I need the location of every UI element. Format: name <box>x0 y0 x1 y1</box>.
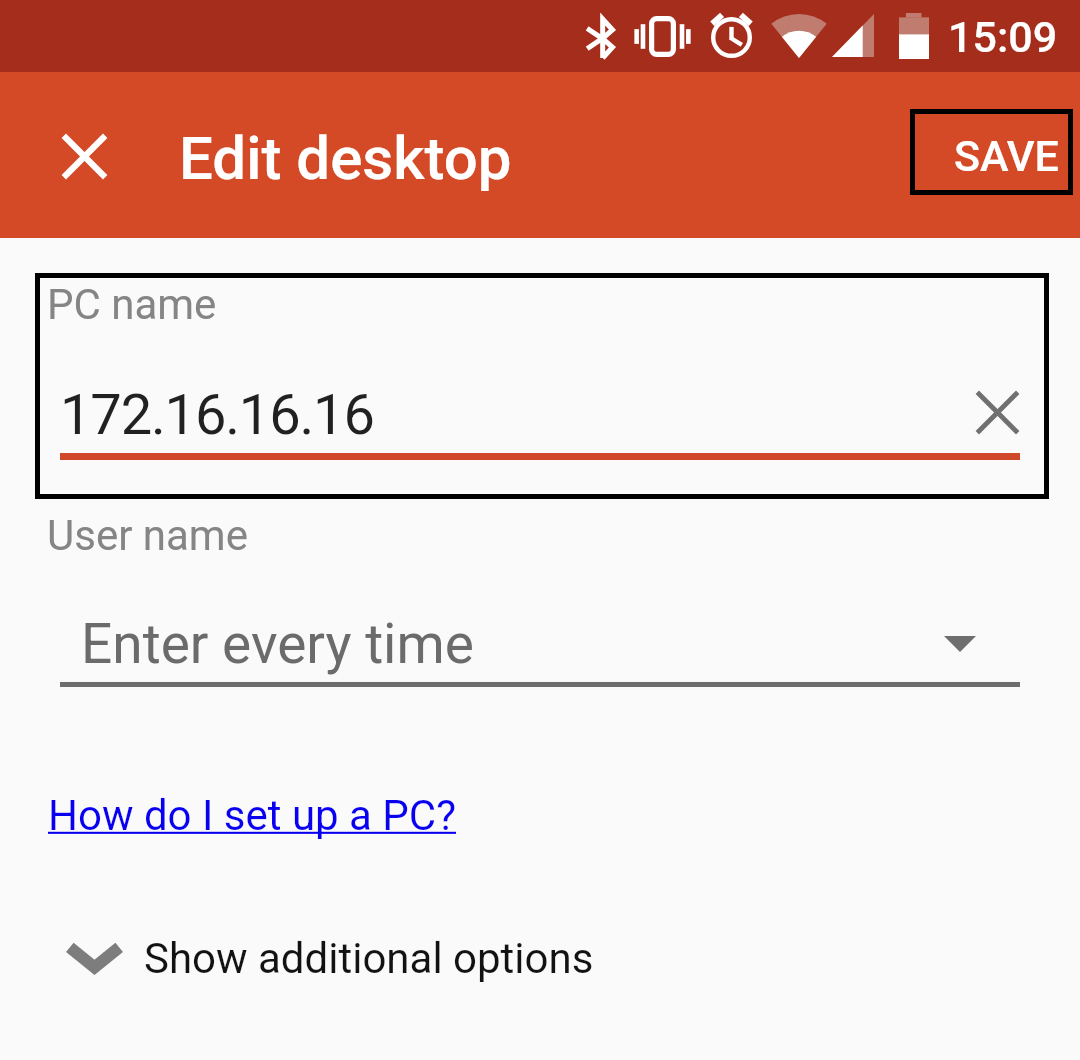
staticText: User name <box>47 511 248 560</box>
staticText: How do I set up a PC? <box>48 791 457 840</box>
staticText: SAVE <box>954 131 1059 181</box>
button[interactable]: How do I set up a PC? <box>48 791 457 840</box>
button[interactable]: SAVE <box>915 114 1068 190</box>
staticText: PC name <box>47 280 217 329</box>
button[interactable]: Enter every time <box>60 604 1020 689</box>
button[interactable]: PC name <box>40 278 1044 494</box>
staticText: Show additional options <box>144 934 594 983</box>
staticText: 15:09 <box>948 12 1058 62</box>
button[interactable]: Close <box>51 123 117 189</box>
staticText: Enter every time <box>81 612 474 676</box>
button[interactable]: Clear PC name <box>960 375 1034 449</box>
staticText: 172.16.16.16 <box>60 382 374 448</box>
staticText: Edit desktop <box>179 123 512 193</box>
button[interactable]: Show additional options <box>0 913 1080 1003</box>
